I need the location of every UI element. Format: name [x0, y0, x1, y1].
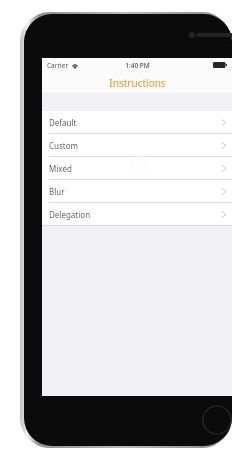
button[interactable]: Delegation	[42, 203, 232, 225]
staticText: Blur	[49, 186, 65, 197]
button[interactable]: Default	[42, 111, 232, 133]
staticText: Mixed	[49, 163, 72, 174]
staticText: Delegation	[49, 209, 91, 220]
staticText: Instructions	[109, 76, 166, 90]
button[interactable]: Mixed	[42, 157, 232, 179]
staticText: Default	[49, 117, 77, 128]
staticText: 1:40 PM	[125, 61, 150, 70]
staticText: Custom	[49, 140, 79, 151]
button[interactable]: Blur	[42, 180, 232, 202]
button[interactable]: Custom	[42, 134, 232, 156]
staticText: Carrier	[47, 61, 69, 70]
